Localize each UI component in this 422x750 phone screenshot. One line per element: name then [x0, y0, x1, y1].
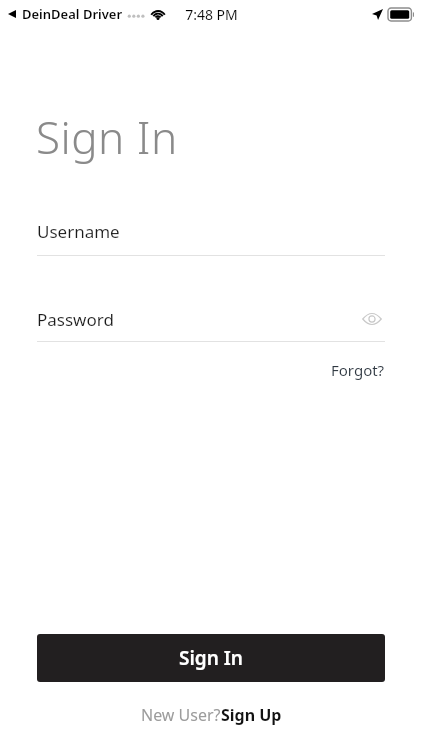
staticText: Password	[37, 308, 114, 331]
staticText: Forgot?	[331, 360, 385, 380]
staticText: Sign In	[179, 645, 243, 671]
button[interactable]: Show password	[359, 306, 385, 332]
button[interactable]: Username	[0, 220, 422, 256]
staticText: Sign In	[36, 107, 178, 167]
button[interactable]: Password	[37, 306, 385, 332]
button[interactable]: Forgot?	[329, 358, 387, 382]
staticText: 7:48 PM	[185, 5, 238, 24]
button[interactable]: Sign In	[37, 634, 385, 682]
staticText: Sign Up	[221, 704, 282, 726]
staticText: New User?	[141, 704, 221, 726]
staticText: DeinDeal Driver	[22, 5, 123, 23]
button[interactable]: Sign Up	[221, 704, 282, 726]
staticText: Username	[37, 220, 120, 243]
